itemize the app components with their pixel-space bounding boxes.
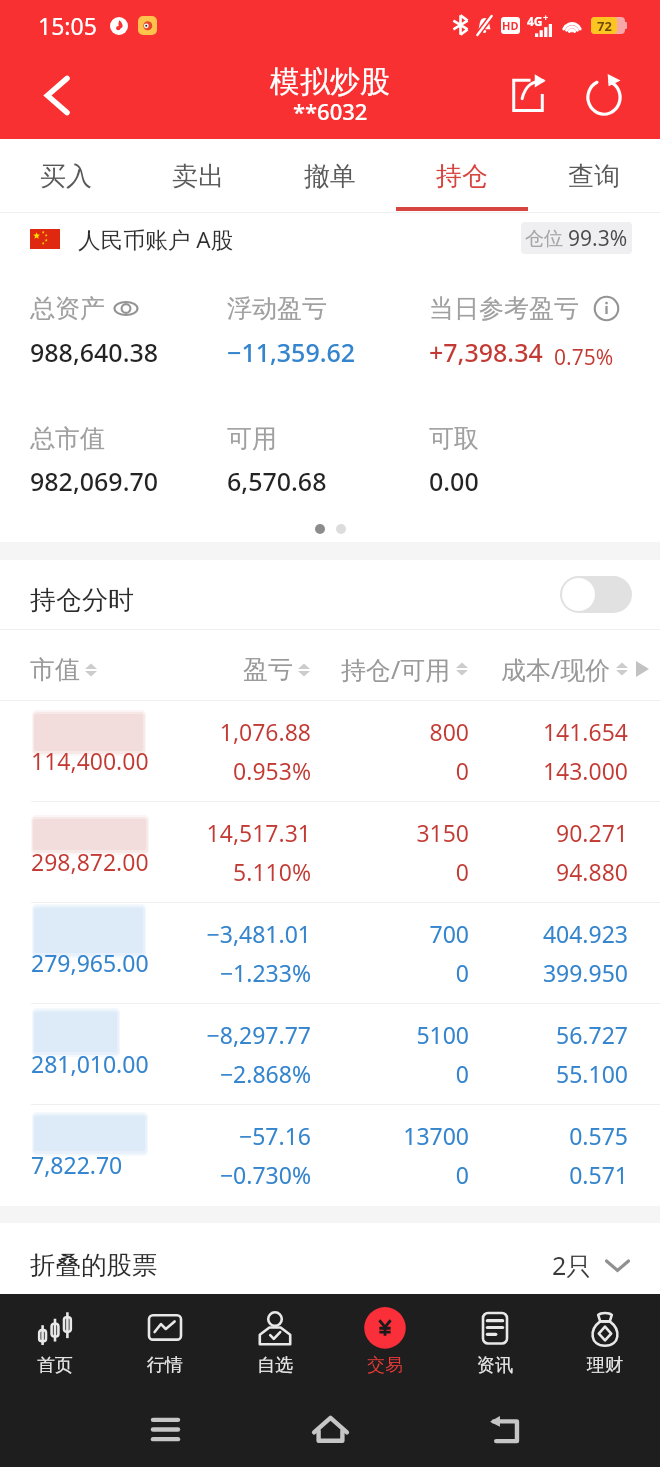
staticText: 0	[455, 1159, 469, 1190]
button[interactable]: 资讯	[440, 1294, 550, 1391]
staticText: 0.575	[569, 1120, 628, 1151]
staticText: 3150	[416, 817, 469, 848]
staticText: 13700	[403, 1120, 469, 1151]
staticText: 市值	[30, 654, 80, 685]
staticText: 折叠的股票	[30, 1249, 158, 1281]
staticText: 交易	[367, 1354, 403, 1377]
button[interactable]: 首页	[0, 1294, 110, 1391]
staticText: 模拟炒股	[270, 63, 390, 101]
staticText: HD	[502, 18, 519, 33]
staticText: 114,400.00	[31, 745, 149, 776]
staticText: −3,481.01	[206, 918, 311, 949]
staticText: 141.654	[542, 716, 628, 747]
button[interactable]: Share	[490, 57, 566, 133]
staticText: 399.950	[542, 957, 628, 988]
button[interactable]: 281,010.00	[0, 1004, 660, 1105]
button[interactable]: 理财	[550, 1294, 660, 1391]
staticText: −1.233%	[219, 957, 311, 988]
staticText: 0.953%	[233, 755, 311, 786]
staticText: 撤单	[304, 160, 356, 193]
staticText: 0	[455, 1058, 469, 1089]
staticText: 持仓/可用	[341, 652, 451, 686]
staticText: 0	[455, 755, 469, 786]
staticText: 理财	[587, 1354, 623, 1377]
staticText: **6032	[293, 96, 368, 126]
staticText: 首页	[37, 1354, 73, 1377]
staticText: 0.00	[429, 464, 479, 498]
button[interactable]: Back	[13, 51, 101, 139]
staticText: 盈亏	[243, 654, 293, 685]
staticText: 持仓	[436, 160, 488, 193]
staticText: 279,965.00	[31, 947, 149, 978]
staticText: 可取	[429, 423, 479, 454]
staticText: 298,872.00	[31, 846, 149, 877]
staticText: 99.3%	[568, 224, 628, 253]
staticText: 资讯	[477, 1354, 513, 1377]
button[interactable]: 持仓分时开关	[560, 576, 632, 613]
staticText: +	[543, 11, 549, 23]
staticText: 2只	[552, 1248, 592, 1282]
button[interactable]: Home	[290, 1391, 370, 1467]
staticText: 5.110%	[233, 856, 311, 887]
staticText: 700	[429, 918, 469, 949]
staticText: 0.571	[569, 1159, 628, 1190]
staticText: 56.727	[556, 1019, 628, 1050]
button[interactable]: Refresh	[566, 57, 642, 133]
staticText: 94.880	[556, 856, 628, 887]
staticText: 可用	[227, 423, 277, 454]
staticText: 90.271	[556, 817, 628, 848]
button[interactable]: 298,872.00	[0, 802, 660, 903]
staticText: 查询	[568, 160, 620, 193]
staticText: 404.923	[542, 918, 628, 949]
button[interactable]: 持仓	[396, 139, 528, 213]
button[interactable]: 查询	[528, 139, 660, 213]
staticText: 4G	[527, 13, 543, 29]
staticText: +7,398.34	[429, 335, 543, 369]
staticText: 卖出	[172, 160, 224, 193]
staticText: 15:05	[38, 10, 97, 41]
staticText: 0.75%	[554, 343, 614, 372]
staticText: 143.000	[542, 755, 628, 786]
staticText: −8,297.77	[206, 1019, 311, 1050]
staticText: 成本/现价	[501, 652, 611, 686]
staticText: 仓位	[525, 227, 563, 251]
staticText: 总市值	[30, 423, 105, 454]
button[interactable]: Back	[465, 1391, 545, 1467]
staticText: 0	[455, 957, 469, 988]
button[interactable]: 自选	[220, 1294, 330, 1391]
button[interactable]: 279,965.00	[0, 903, 660, 1004]
staticText: 800	[429, 716, 469, 747]
staticText: 281,010.00	[31, 1048, 149, 1079]
button[interactable]: 7,822.70	[0, 1105, 660, 1206]
staticText: 72	[597, 17, 612, 34]
staticText: 人民币账户 A股	[78, 224, 234, 255]
staticText: 14,517.31	[206, 817, 311, 848]
button[interactable]: 买入	[0, 139, 132, 213]
staticText: 988,640.38	[30, 335, 159, 369]
staticText: −0.730%	[219, 1159, 311, 1190]
staticText: −11,359.62	[227, 335, 356, 369]
staticText: 982,069.70	[30, 464, 159, 498]
staticText: 55.100	[556, 1058, 628, 1089]
staticText: 自选	[257, 1354, 293, 1377]
staticText: 1,076.88	[219, 716, 311, 747]
staticText: 7,822.70	[31, 1149, 123, 1180]
staticText: 持仓分时	[30, 584, 134, 617]
button[interactable]: 114,400.00	[0, 701, 660, 802]
staticText: 买入	[40, 160, 92, 193]
staticText: 5100	[416, 1019, 469, 1050]
staticText: 行情	[147, 1354, 183, 1377]
button[interactable]: 撤单	[264, 139, 396, 213]
staticText: 0	[455, 856, 469, 887]
button[interactable]: 折叠的股票	[0, 1223, 660, 1293]
button[interactable]: 行情	[110, 1294, 220, 1391]
button[interactable]: Recents	[125, 1391, 205, 1467]
staticText: 当日参考盈亏	[429, 293, 579, 324]
staticText: −57.16	[239, 1120, 311, 1151]
button[interactable]: 交易	[330, 1294, 440, 1391]
staticText: 浮动盈亏	[227, 293, 327, 324]
staticText: 总资产	[30, 293, 105, 324]
staticText: 6,570.68	[227, 464, 327, 498]
button[interactable]: 卖出	[132, 139, 264, 213]
staticText: −2.868%	[219, 1058, 311, 1089]
